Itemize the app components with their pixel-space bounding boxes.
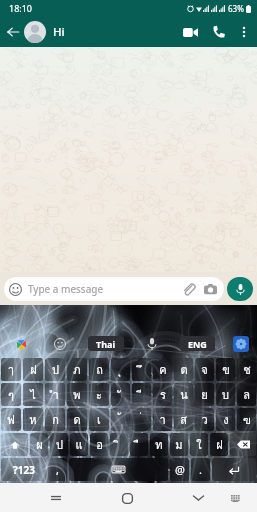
button[interactable]: Thai	[88, 336, 124, 351]
button[interactable]	[89, 358, 109, 381]
button[interactable]	[195, 383, 214, 406]
button[interactable]: ส	[174, 408, 193, 431]
button[interactable]	[170, 458, 189, 481]
button[interactable]	[1, 358, 21, 381]
button[interactable]: ป	[50, 433, 68, 456]
button[interactable]	[1, 383, 21, 406]
button[interactable]: Attach	[181, 282, 196, 297]
button[interactable]: ใ	[190, 433, 208, 456]
button[interactable]: ๆ	[1, 383, 21, 406]
button[interactable]	[50, 433, 68, 456]
button[interactable]	[153, 358, 172, 381]
button[interactable]	[195, 358, 214, 381]
button[interactable]: ด	[67, 408, 87, 431]
button[interactable]: ผ	[30, 433, 48, 456]
button[interactable]: Enter	[212, 458, 256, 481]
button[interactable]: Recents	[42, 484, 70, 512]
button[interactable]: ต	[174, 358, 193, 381]
button[interactable]	[132, 358, 151, 381]
button[interactable]	[45, 408, 65, 431]
button[interactable]	[153, 408, 172, 431]
button[interactable]: Voice message	[227, 277, 253, 301]
button[interactable]	[111, 408, 130, 431]
button[interactable]: า	[153, 408, 172, 431]
button[interactable]: Hide keyboard	[184, 484, 212, 512]
button[interactable]: Home	[113, 484, 141, 512]
button[interactable]: ถ	[89, 358, 109, 381]
button[interactable]: ุ	[111, 358, 130, 381]
button[interactable]: ว	[195, 408, 214, 431]
button[interactable]: ฟ	[1, 408, 21, 431]
button[interactable]: ฃ	[237, 408, 256, 431]
button[interactable]	[216, 358, 235, 381]
button[interactable]: Back	[3, 22, 23, 42]
button[interactable]: ะ	[89, 383, 109, 406]
button[interactable]	[1, 408, 21, 431]
button[interactable]: ข	[216, 358, 235, 381]
button[interactable]	[23, 358, 43, 381]
button[interactable]: เ	[89, 408, 109, 431]
button[interactable]	[67, 408, 87, 431]
button[interactable]: Voice input	[142, 334, 162, 354]
button[interactable]	[210, 433, 228, 456]
button[interactable]	[153, 383, 172, 406]
button[interactable]: อ	[90, 433, 108, 456]
button[interactable]: จ	[195, 358, 214, 381]
button[interactable]	[237, 358, 256, 381]
button[interactable]: More options	[233, 21, 255, 43]
button[interactable]	[48, 458, 67, 481]
button[interactable]	[111, 358, 130, 381]
button[interactable]: Type a message	[4, 277, 224, 301]
button[interactable]: ภ	[67, 358, 87, 381]
button[interactable]: Backspace	[230, 433, 256, 456]
button[interactable]: ห	[23, 408, 43, 431]
button[interactable]: @	[170, 458, 189, 481]
button[interactable]	[190, 433, 208, 456]
button[interactable]: Space	[69, 458, 168, 481]
button[interactable]: ย	[195, 383, 214, 406]
button[interactable]: Shift	[1, 433, 28, 456]
button[interactable]: ท	[150, 433, 168, 456]
button[interactable]	[89, 408, 109, 431]
button[interactable]	[174, 408, 193, 431]
button[interactable]: ร	[153, 383, 172, 406]
button[interactable]: ้	[111, 408, 130, 431]
button[interactable]: ป	[45, 358, 65, 381]
button[interactable]	[89, 383, 109, 406]
button[interactable]: Apps	[12, 335, 30, 353]
button[interactable]: Backspace	[230, 433, 256, 456]
button[interactable]	[174, 358, 193, 381]
button[interactable]	[216, 383, 235, 406]
button[interactable]: ื	[130, 433, 148, 456]
button[interactable]	[195, 408, 214, 431]
button[interactable]	[30, 433, 48, 456]
button[interactable]: ฝ	[210, 433, 228, 456]
button[interactable]: ง	[216, 408, 235, 431]
button[interactable]	[174, 383, 193, 406]
button[interactable]: ำ	[45, 383, 65, 406]
button[interactable]	[237, 383, 256, 406]
button[interactable]: ,	[48, 458, 67, 481]
button[interactable]: Settings	[233, 336, 249, 352]
button[interactable]	[216, 408, 235, 431]
button[interactable]: Video call	[175, 17, 205, 47]
button[interactable]	[150, 433, 168, 456]
button[interactable]: Enter	[212, 458, 256, 481]
button[interactable]: ช	[237, 358, 256, 381]
button[interactable]	[23, 383, 43, 406]
button[interactable]	[191, 458, 210, 481]
button[interactable]: ล	[237, 383, 256, 406]
button[interactable]	[70, 433, 88, 456]
button[interactable]: Call	[205, 18, 233, 46]
button[interactable]	[45, 383, 65, 406]
button[interactable]	[67, 358, 87, 381]
button[interactable]: ิ	[110, 433, 128, 456]
button[interactable]	[1, 458, 46, 481]
button[interactable]: .	[191, 458, 210, 481]
button[interactable]: Camera	[203, 282, 218, 297]
button[interactable]	[110, 433, 128, 456]
button[interactable]: แ	[70, 433, 88, 456]
button[interactable]: ฝ	[23, 358, 43, 381]
button[interactable]: ก	[45, 408, 65, 431]
button[interactable]: ไ	[23, 383, 43, 406]
